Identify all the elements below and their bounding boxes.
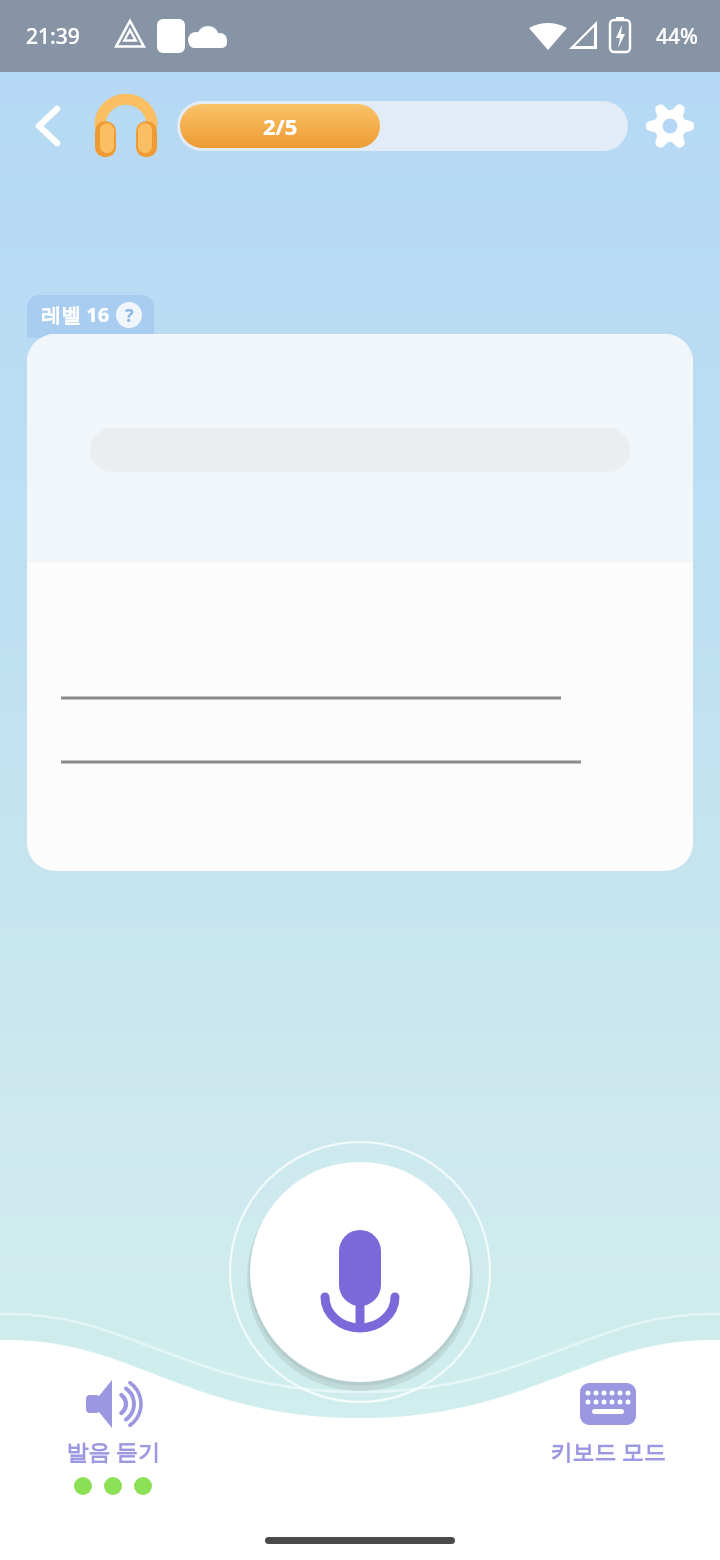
staticText: 44% xyxy=(656,22,698,51)
button[interactable]: 발음 듣기 xyxy=(30,1372,196,1500)
staticText: ? xyxy=(125,303,134,328)
button[interactable] xyxy=(27,334,693,871)
staticText: 2/5 xyxy=(263,111,298,141)
staticText: 키보드 모드 xyxy=(550,1436,666,1466)
button[interactable]: Audio xyxy=(95,96,157,158)
staticText: 레벨 16 xyxy=(41,301,110,328)
button[interactable]: 키보드 모드 xyxy=(520,1372,696,1470)
button[interactable]: 2/5 xyxy=(177,101,628,151)
staticText: 발음 듣기 xyxy=(66,1436,160,1466)
staticText: 21:39 xyxy=(26,22,80,51)
button[interactable]: Back xyxy=(20,98,76,154)
button[interactable]: 레벨 16 xyxy=(27,295,154,338)
button[interactable]: Settings xyxy=(642,98,698,154)
button[interactable]: Record xyxy=(230,1142,490,1402)
